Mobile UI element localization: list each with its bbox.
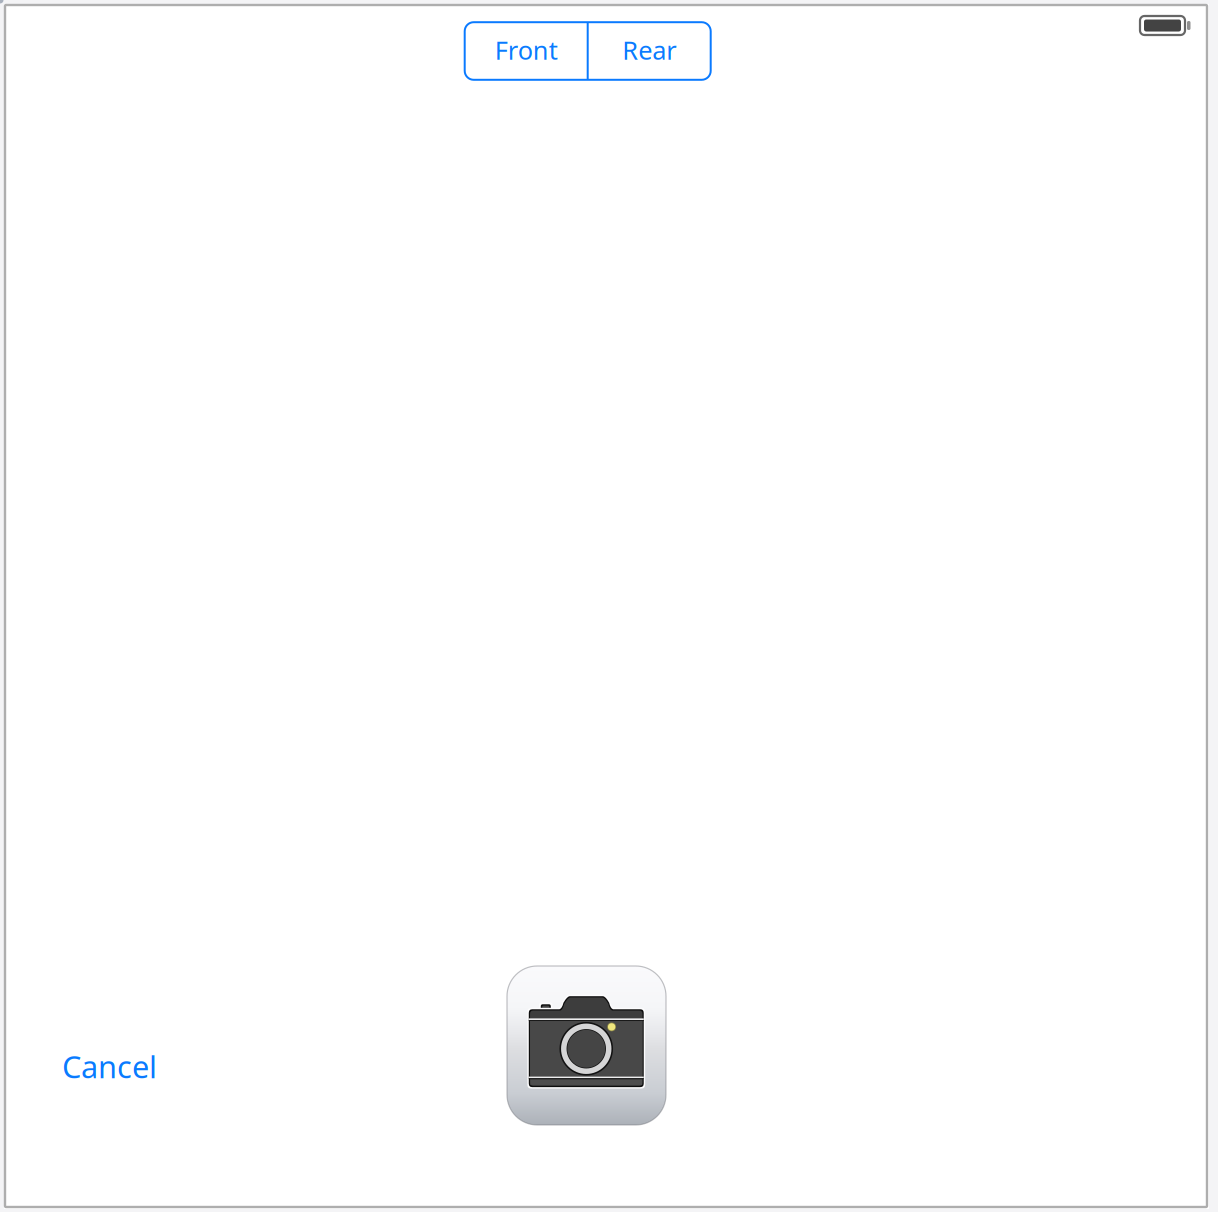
staticText: Cancel xyxy=(62,1046,157,1087)
button[interactable]: Take Photo xyxy=(507,966,666,1125)
button[interactable]: Front xyxy=(465,21,588,79)
button[interactable]: Rear xyxy=(588,21,711,79)
staticText: Rear xyxy=(622,33,676,67)
staticText: Front xyxy=(495,33,558,67)
button[interactable]: Cancel xyxy=(62,1046,157,1087)
